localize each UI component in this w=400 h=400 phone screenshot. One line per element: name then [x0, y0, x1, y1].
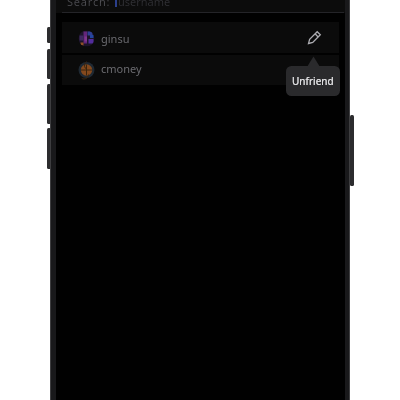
staticText: Search:	[67, 0, 111, 9]
staticText: username	[118, 0, 171, 9]
button[interactable]	[304, 28, 324, 48]
button[interactable]	[56, 0, 345, 13]
button[interactable]	[62, 55, 339, 85]
staticText: ginsu	[101, 31, 130, 46]
staticText: cmoney	[101, 61, 142, 76]
staticText: Unfriend	[292, 74, 334, 88]
button[interactable]	[62, 22, 339, 53]
button[interactable]: Unfriend	[286, 66, 340, 96]
